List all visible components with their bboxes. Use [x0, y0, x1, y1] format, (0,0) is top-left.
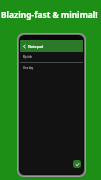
button[interactable]: One day	[20, 63, 83, 73]
button[interactable]: My title	[20, 52, 83, 63]
staticText: Notepad	[28, 44, 44, 49]
staticText: One day	[23, 66, 34, 70]
button[interactable]: Save note	[73, 160, 81, 168]
staticText: My title	[23, 55, 33, 59]
staticText: Blazing-fast & minimal!	[1, 9, 98, 20]
button[interactable]: Back	[21, 43, 27, 49]
